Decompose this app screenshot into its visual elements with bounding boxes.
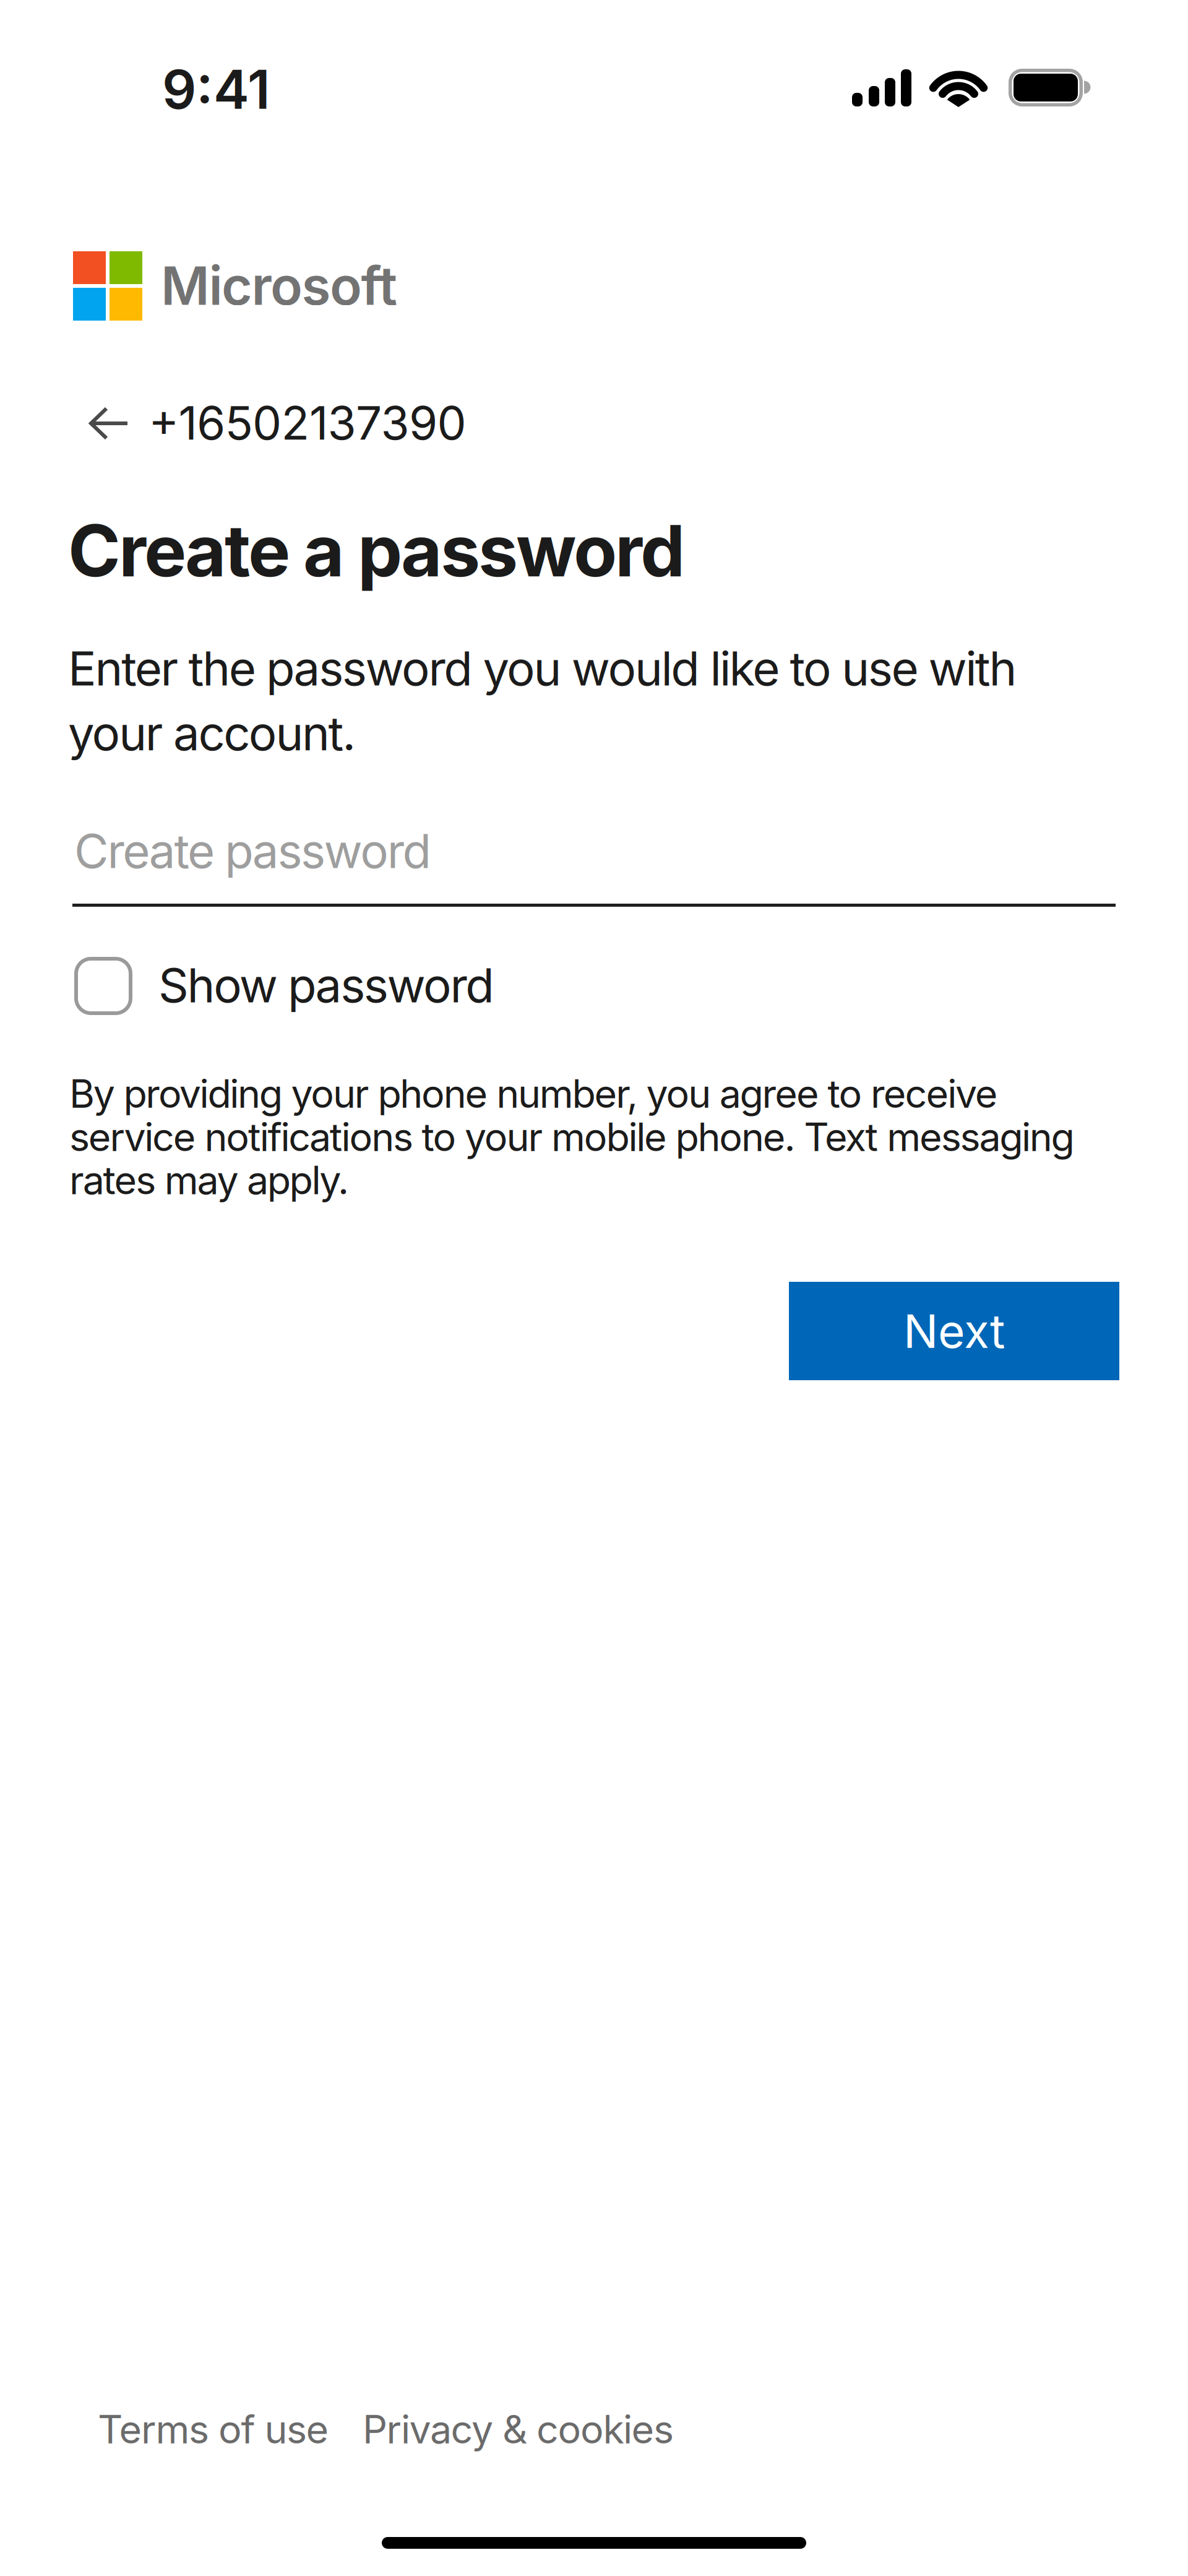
staticText: By providing your phone number, you agre… <box>69 1071 1075 1203</box>
staticText: Terms of use <box>98 2406 329 2452</box>
staticText: Show password <box>158 957 495 1013</box>
staticText: +16502137390 <box>148 395 466 450</box>
staticText: Enter the password you would like to use… <box>68 641 1017 761</box>
staticText: Privacy & cookies <box>363 2406 674 2452</box>
button[interactable]: Next <box>789 1282 1119 1380</box>
button[interactable]: Privacy & cookies <box>363 2406 674 2452</box>
staticText: Create a password <box>68 509 685 593</box>
staticText: Microsoft <box>161 254 397 317</box>
staticText: Next <box>903 1304 1005 1358</box>
button[interactable]: Terms of use <box>98 2406 329 2452</box>
staticText: Create password <box>74 823 432 879</box>
button[interactable]: Show password <box>74 957 495 1015</box>
button[interactable]: Back <box>87 406 131 441</box>
button[interactable]: Create password <box>72 823 1116 907</box>
staticText: 9:41 <box>162 58 270 121</box>
